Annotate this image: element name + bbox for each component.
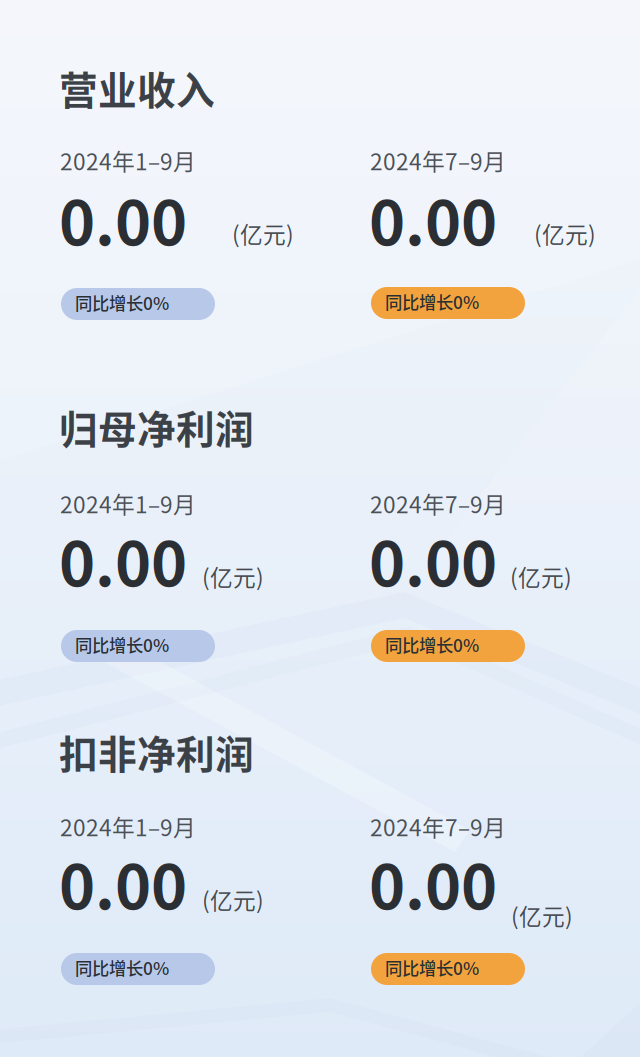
- staticText: 同比增长0%: [75, 290, 169, 315]
- staticText: 2024年1–9月: [60, 487, 196, 520]
- staticText: 0.00: [369, 515, 497, 604]
- staticText: 2024年1–9月: [60, 810, 196, 843]
- button[interactable]: 同比增长0%: [371, 630, 525, 662]
- staticText: 同比增长0%: [385, 955, 479, 980]
- staticText: 归母净利润: [59, 399, 254, 455]
- staticText: 0.00: [59, 838, 187, 927]
- button[interactable]: 同比增长0%: [61, 288, 215, 320]
- staticText: (亿元): [511, 899, 573, 932]
- staticText: (亿元): [232, 217, 294, 250]
- button[interactable]: 同比增长0%: [371, 287, 525, 319]
- staticText: 同比增长0%: [75, 632, 169, 657]
- staticText: (亿元): [510, 560, 572, 593]
- staticText: 2024年1–9月: [60, 144, 196, 177]
- staticText: 0.00: [369, 174, 497, 263]
- staticText: 2024年7–9月: [370, 487, 506, 520]
- staticText: 同比增长0%: [75, 955, 169, 980]
- staticText: 同比增长0%: [385, 289, 479, 314]
- staticText: 同比增长0%: [385, 632, 479, 657]
- staticText: 扣非净利润: [59, 724, 254, 780]
- staticText: 0.00: [59, 515, 187, 604]
- button[interactable]: 同比增长0%: [61, 630, 215, 662]
- staticText: (亿元): [202, 883, 264, 916]
- button[interactable]: 同比增长0%: [371, 953, 525, 985]
- staticText: 0.00: [369, 838, 497, 927]
- staticText: 2024年7–9月: [370, 810, 506, 843]
- staticText: (亿元): [202, 560, 264, 593]
- staticText: 2024年7–9月: [370, 144, 506, 177]
- staticText: 0.00: [59, 174, 187, 263]
- button[interactable]: 同比增长0%: [61, 953, 215, 985]
- staticText: (亿元): [534, 217, 596, 250]
- staticText: 营业收入: [59, 60, 215, 116]
